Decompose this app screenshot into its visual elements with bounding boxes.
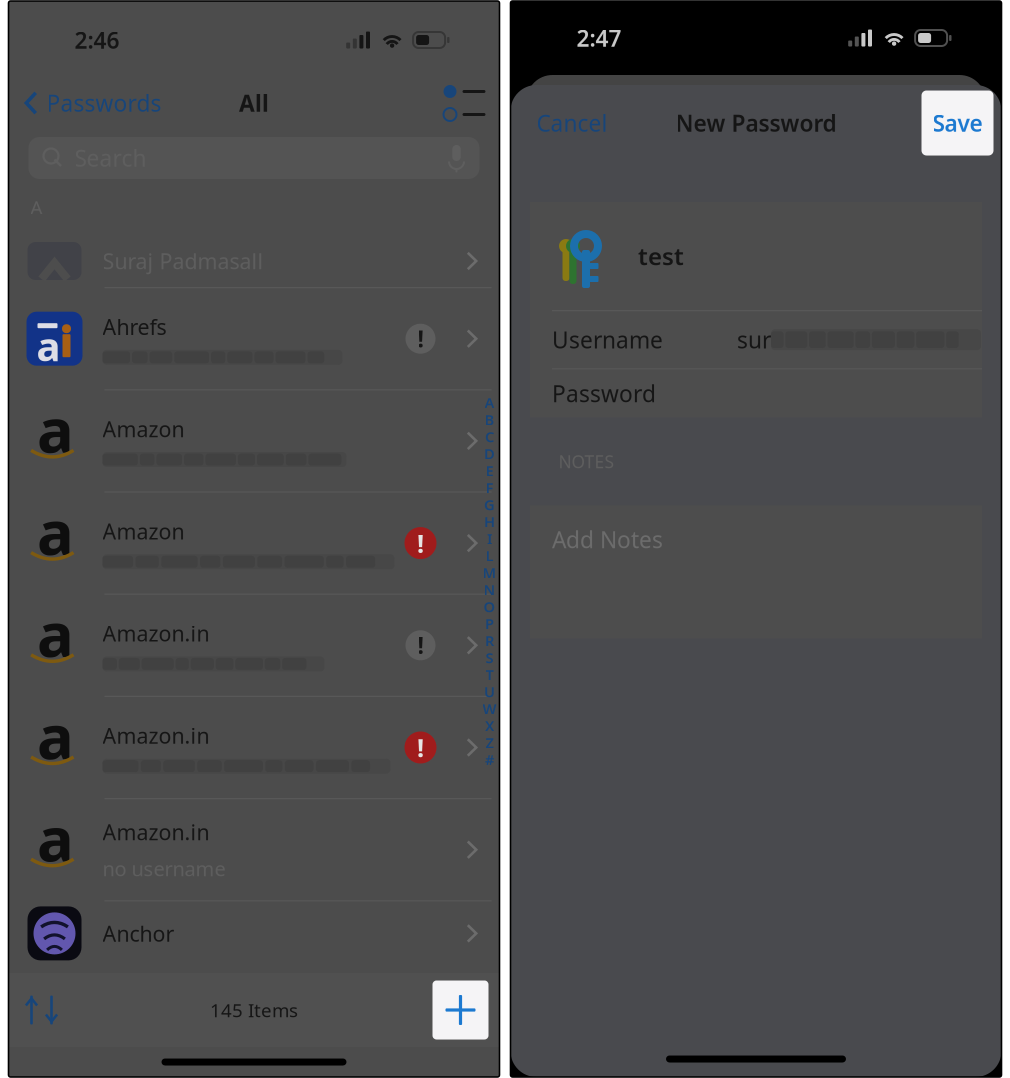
staticText: 2:46 xyxy=(74,25,119,55)
staticText: Ahrefs xyxy=(102,312,166,341)
button[interactable]: Sort xyxy=(8,982,58,1038)
staticText: ! xyxy=(417,630,423,660)
staticText: O xyxy=(483,597,495,616)
button[interactable]: Passwords xyxy=(8,78,161,128)
staticText: D xyxy=(484,444,495,463)
staticText: ! xyxy=(417,324,423,354)
staticText: a xyxy=(37,388,74,470)
staticText: # xyxy=(485,750,494,769)
staticText: Z xyxy=(485,733,493,752)
staticText: B xyxy=(484,410,494,429)
staticText: R xyxy=(485,631,494,650)
staticText: Suraj Padmasall xyxy=(102,247,263,275)
staticText: S xyxy=(485,648,493,667)
staticText: F xyxy=(485,478,493,497)
staticText: Passwords xyxy=(46,88,161,118)
staticText: Amazon xyxy=(102,415,184,443)
staticText: ! xyxy=(417,526,424,560)
staticText: L xyxy=(485,546,493,565)
button[interactable]: Save xyxy=(921,90,1001,155)
staticText: M xyxy=(482,563,496,582)
button[interactable]: a xyxy=(8,493,499,594)
staticText: Amazon.in xyxy=(102,721,209,750)
staticText: 145 Items xyxy=(210,998,298,1022)
staticText: Cancel xyxy=(536,108,607,138)
button[interactable]: a xyxy=(8,288,499,389)
button[interactable]: a xyxy=(8,799,499,900)
staticText: A xyxy=(30,195,42,219)
staticText: a xyxy=(36,319,60,372)
staticText: I xyxy=(487,529,492,548)
button[interactable]: a xyxy=(8,595,499,696)
staticText: Amazon.in xyxy=(102,818,209,846)
staticText: New Password xyxy=(675,108,836,138)
staticText: a xyxy=(37,797,74,878)
staticText: Add Notes xyxy=(552,524,663,554)
staticText: W xyxy=(482,699,496,718)
button[interactable]: Suraj Padmasall xyxy=(8,235,499,287)
staticText: Search xyxy=(74,143,146,173)
staticText: ! xyxy=(417,731,424,764)
staticText: a xyxy=(37,593,74,674)
staticText: Amazon xyxy=(102,517,184,545)
staticText: G xyxy=(484,495,495,514)
staticText: Password xyxy=(552,378,656,408)
staticText: A xyxy=(484,393,494,412)
button[interactable]: Add password xyxy=(432,980,499,1039)
button[interactable]: a xyxy=(8,697,499,798)
staticText: X xyxy=(485,716,494,735)
staticText: NOTES xyxy=(558,450,614,473)
staticText: P xyxy=(485,614,494,633)
staticText: T xyxy=(485,665,493,684)
staticText: sur xyxy=(737,325,771,355)
staticText: Amazon.in xyxy=(102,619,209,647)
button[interactable]: a xyxy=(8,390,499,491)
staticText: C xyxy=(485,427,494,446)
staticText: test xyxy=(638,240,684,272)
staticText: H xyxy=(484,512,495,531)
button[interactable]: Cancel xyxy=(510,96,607,150)
staticText: U xyxy=(484,682,495,701)
staticText: Save xyxy=(932,108,982,138)
staticText: Anchor xyxy=(102,919,174,947)
staticText: no username xyxy=(102,855,225,882)
staticText: 2:47 xyxy=(576,23,621,53)
staticText: a xyxy=(37,490,74,572)
staticText: a xyxy=(37,695,74,776)
staticText: All xyxy=(239,88,269,118)
staticText: E xyxy=(485,461,493,480)
staticText: Username xyxy=(552,325,663,355)
staticText: N xyxy=(483,580,495,599)
button[interactable]: Filter list xyxy=(443,79,499,127)
button[interactable]: Anchor xyxy=(8,901,499,965)
